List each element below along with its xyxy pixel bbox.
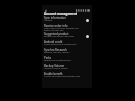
staticText: Synchro Research <box>44 48 67 52</box>
staticText: Account <box>44 19 53 22</box>
staticText: Sync information <box>44 16 66 20</box>
button[interactable]: Toggle <box>85 18 90 23</box>
staticText: Backup Volume <box>44 64 65 68</box>
staticText: Enable benefit <box>44 72 63 76</box>
button[interactable]: Android credit <box>42 40 92 48</box>
staticText: Rewards and redemptions <box>44 59 71 62</box>
staticText: Upload, restore, delete <box>44 67 68 70</box>
staticText: Access the supported benefits here <box>44 75 81 78</box>
button[interactable]: Synchro Research <box>42 48 92 56</box>
staticText: offers you may like <box>44 29 64 32</box>
button[interactable]: Sync information <box>42 16 92 24</box>
staticText: Receive order info <box>44 24 68 28</box>
button[interactable]: Suggested product <box>42 32 92 40</box>
staticText: Suggested product <box>44 32 69 36</box>
button[interactable]: Backup Volume <box>42 64 92 72</box>
button[interactable]: Perks <box>42 56 92 64</box>
staticText: Check balance and transactions <box>44 43 77 46</box>
staticText: Learn about product updates and <box>44 27 79 30</box>
button[interactable]: Back <box>44 9 47 12</box>
staticText: Perks <box>44 56 52 60</box>
staticText: Account management <box>44 12 78 16</box>
button[interactable]: Receive order info <box>42 24 92 32</box>
staticText: Android credit <box>44 40 63 44</box>
button[interactable]: Enable benefit <box>42 72 92 80</box>
button[interactable]: Toggle <box>85 34 90 39</box>
staticText: Receive info about new items <box>44 35 75 38</box>
staticText: Balance, top ups, history <box>44 51 70 54</box>
